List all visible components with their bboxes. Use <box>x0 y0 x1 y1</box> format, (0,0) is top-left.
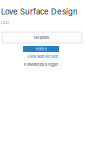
staticText: Home <box>35 47 46 51</box>
staticText: Powered by <box>24 62 44 67</box>
staticText: LSD <box>1 20 9 25</box>
staticText: . <box>60 62 61 67</box>
staticText: Love Surface Design <box>1 7 78 16</box>
button[interactable]: Home <box>23 46 59 52</box>
button[interactable]: Blogger <box>45 62 59 67</box>
staticText: Blogger <box>45 62 59 67</box>
button[interactable]: View web version <box>27 54 58 59</box>
staticText: View web version <box>27 54 58 59</box>
staticText: No posts. <box>34 35 50 40</box>
